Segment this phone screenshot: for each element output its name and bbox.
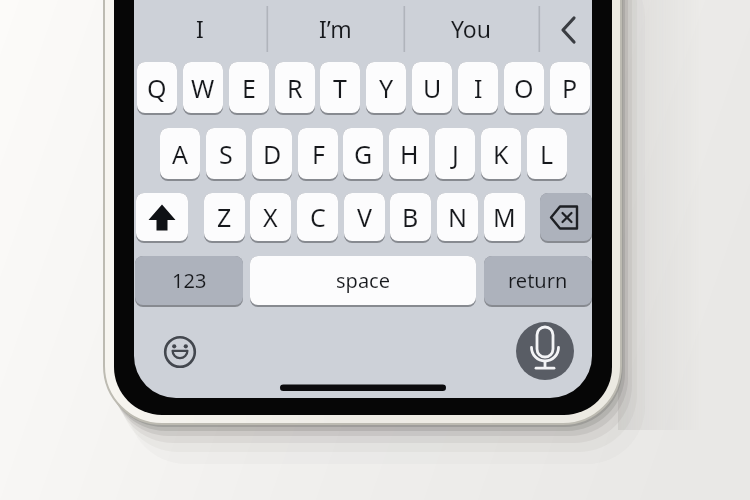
- button[interactable]: [136, 193, 188, 241]
- button[interactable]: [539, 4, 592, 52]
- button[interactable]: L: [527, 128, 567, 179]
- staticText: I: [474, 71, 483, 105]
- button[interactable]: W: [183, 62, 223, 113]
- button[interactable]: H: [389, 128, 429, 179]
- button[interactable]: return: [484, 256, 592, 305]
- staticText: J: [452, 137, 459, 171]
- staticText: U: [423, 71, 442, 105]
- staticText: space: [336, 267, 390, 294]
- button[interactable]: [540, 193, 592, 241]
- staticText: D: [263, 137, 282, 171]
- button[interactable]: T: [320, 62, 360, 113]
- button[interactable]: 123: [135, 256, 243, 305]
- staticText: F: [312, 137, 325, 171]
- button[interactable]: X: [250, 193, 291, 241]
- button[interactable]: U: [412, 62, 452, 113]
- button[interactable]: Q: [137, 62, 177, 113]
- staticText: I: [196, 13, 204, 44]
- staticText: S: [219, 137, 233, 171]
- button[interactable]: O: [504, 62, 544, 113]
- button[interactable]: M: [484, 193, 525, 241]
- button[interactable]: [516, 322, 574, 380]
- button[interactable]: N: [437, 193, 478, 241]
- staticText: return: [508, 267, 568, 294]
- staticText: H: [400, 137, 419, 171]
- staticText: 123: [172, 267, 207, 294]
- button[interactable]: You: [404, 4, 538, 52]
- staticText: A: [172, 137, 188, 171]
- button[interactable]: G: [343, 128, 383, 179]
- button[interactable]: B: [390, 193, 431, 241]
- staticText: K: [493, 137, 509, 171]
- staticText: O: [514, 71, 534, 105]
- button[interactable]: V: [344, 193, 385, 241]
- staticText: Z: [217, 200, 232, 234]
- button[interactable]: I: [458, 62, 498, 113]
- staticText: X: [263, 200, 278, 234]
- staticText: L: [540, 137, 554, 171]
- button[interactable]: K: [481, 128, 521, 179]
- button[interactable]: space: [250, 256, 476, 305]
- button[interactable]: I: [134, 4, 266, 52]
- staticText: E: [242, 71, 256, 105]
- staticText: I’m: [319, 13, 352, 44]
- button[interactable]: C: [297, 193, 338, 241]
- staticText: You: [451, 13, 491, 44]
- staticText: N: [448, 200, 468, 234]
- staticText: C: [310, 200, 326, 234]
- staticText: M: [493, 200, 516, 234]
- staticText: Y: [379, 71, 394, 105]
- staticText: Q: [147, 71, 167, 105]
- staticText: B: [402, 200, 419, 234]
- button[interactable]: E: [229, 62, 269, 113]
- button[interactable]: F: [298, 128, 338, 179]
- button[interactable]: Y: [366, 62, 406, 113]
- staticText: P: [562, 71, 578, 105]
- staticText: T: [333, 71, 347, 105]
- button[interactable]: J: [435, 128, 475, 179]
- button[interactable]: S: [206, 128, 246, 179]
- button[interactable]: R: [275, 62, 315, 113]
- button[interactable]: Z: [204, 193, 245, 241]
- button[interactable]: P: [550, 62, 590, 113]
- staticText: R: [287, 71, 303, 105]
- staticText: V: [357, 200, 373, 234]
- staticText: G: [354, 137, 373, 171]
- staticText: W: [191, 71, 215, 105]
- button[interactable]: D: [252, 128, 292, 179]
- button[interactable]: [158, 330, 202, 374]
- button[interactable]: I’m: [267, 4, 403, 52]
- button[interactable]: A: [160, 128, 200, 179]
